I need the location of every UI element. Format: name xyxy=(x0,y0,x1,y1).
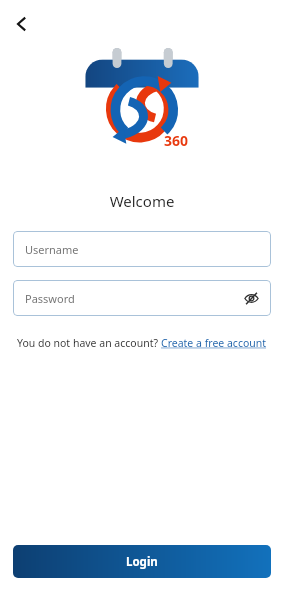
button[interactable]: Password xyxy=(13,280,271,316)
staticText: You do not have an account? xyxy=(17,336,161,350)
button[interactable]: Create a free account xyxy=(161,336,267,350)
staticText: Username xyxy=(25,242,79,257)
staticText: Welcome xyxy=(0,191,284,211)
button[interactable]: Username xyxy=(13,231,271,267)
staticText: Create a free account xyxy=(161,336,267,350)
staticText: 360 xyxy=(164,131,189,150)
button[interactable]: Show password xyxy=(240,287,262,309)
button[interactable]: Login xyxy=(13,545,271,578)
button[interactable]: Back xyxy=(4,6,40,42)
staticText: Login xyxy=(126,554,158,570)
staticText: Password xyxy=(25,291,75,306)
